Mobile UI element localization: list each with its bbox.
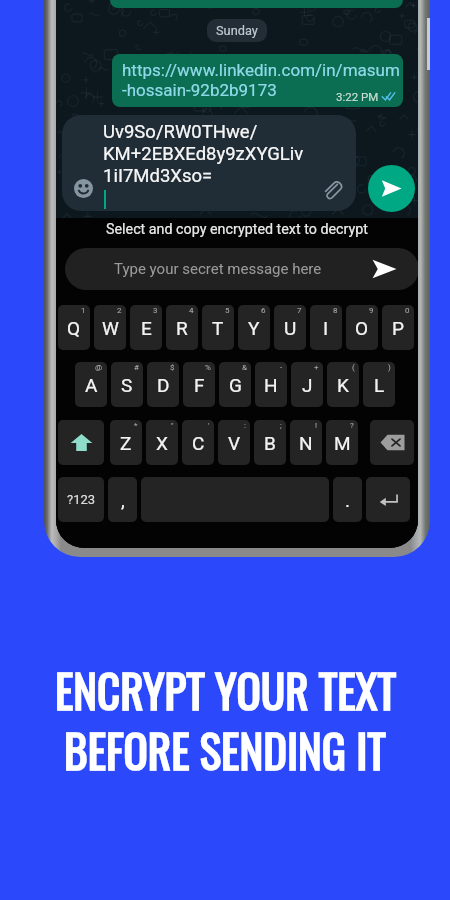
staticText: + bbox=[314, 363, 319, 372]
staticText: B bbox=[264, 432, 276, 454]
staticText: X bbox=[156, 432, 168, 454]
button[interactable]: D bbox=[147, 362, 179, 407]
button[interactable]: W bbox=[94, 305, 126, 350]
button[interactable]: H bbox=[255, 362, 287, 407]
staticText: 1iI7Md3Xso= bbox=[103, 165, 213, 187]
staticText: W bbox=[102, 317, 119, 339]
button[interactable]: Shift bbox=[58, 420, 104, 465]
staticText: J bbox=[302, 374, 313, 396]
staticText: 1 bbox=[81, 306, 86, 315]
staticText: 3 bbox=[153, 306, 158, 315]
button[interactable]: L bbox=[363, 362, 395, 407]
staticText: 6 bbox=[261, 306, 266, 315]
staticText: 9 bbox=[369, 306, 374, 315]
staticText: 3:22 PM bbox=[336, 90, 379, 103]
staticText: M bbox=[334, 432, 351, 454]
staticText: ? bbox=[350, 421, 354, 430]
staticText: , bbox=[121, 489, 125, 511]
button[interactable]: Z bbox=[110, 420, 142, 465]
button[interactable]: P bbox=[382, 305, 414, 350]
button[interactable]: Q bbox=[58, 305, 90, 350]
button[interactable]: Y bbox=[238, 305, 270, 350]
staticText: 4 bbox=[189, 306, 194, 315]
staticText: ENCRYPT YOUR TEXT bbox=[55, 656, 396, 723]
staticText: Sunday bbox=[216, 23, 258, 38]
staticText: N bbox=[299, 432, 313, 454]
button[interactable]: E bbox=[130, 305, 162, 350]
staticText: ( bbox=[352, 363, 355, 372]
button[interactable]: ?123 bbox=[58, 477, 104, 522]
staticText: 0 bbox=[405, 306, 410, 315]
button[interactable]: Send message bbox=[368, 165, 415, 212]
button[interactable]: G bbox=[219, 362, 251, 407]
staticText: ?123 bbox=[67, 492, 96, 507]
staticText: D bbox=[157, 374, 170, 396]
button[interactable]: Type your secret message here bbox=[65, 248, 418, 290]
staticText: 2 bbox=[117, 306, 122, 315]
staticText: Uv9So/RW0THwe/ bbox=[103, 121, 258, 143]
staticText: ; bbox=[280, 421, 282, 430]
staticText: F bbox=[194, 374, 205, 396]
staticText: O bbox=[355, 317, 369, 339]
button[interactable]: S bbox=[111, 362, 143, 407]
staticText: Z bbox=[120, 432, 132, 454]
button[interactable]: N bbox=[290, 420, 322, 465]
staticText: R bbox=[176, 317, 188, 339]
button[interactable]: T bbox=[202, 305, 234, 350]
staticText: % bbox=[205, 363, 211, 372]
staticText: BEFORE SENDING IT bbox=[64, 716, 386, 783]
staticText: $ bbox=[170, 363, 175, 372]
button[interactable]: J bbox=[291, 362, 323, 407]
staticText: * bbox=[134, 421, 138, 430]
staticText: A bbox=[85, 374, 98, 396]
staticText: : bbox=[244, 421, 246, 430]
staticText: " bbox=[171, 421, 174, 430]
button[interactable]: I bbox=[310, 305, 342, 350]
staticText: S bbox=[121, 374, 133, 396]
button[interactable]: , bbox=[108, 477, 137, 522]
staticText: G bbox=[229, 374, 242, 396]
staticText: https://www.linkedin.com/in/masum bbox=[122, 60, 400, 80]
staticText: 7 bbox=[297, 306, 302, 315]
staticText: & bbox=[242, 363, 247, 372]
staticText: H bbox=[264, 374, 278, 396]
button[interactable]: Enter bbox=[366, 477, 410, 522]
staticText: ! bbox=[315, 421, 318, 430]
staticText: -hossain-92b2b9173 bbox=[122, 80, 277, 100]
staticText: K bbox=[337, 374, 349, 396]
staticText: P bbox=[392, 317, 404, 339]
staticText: KM+2EBXEd8y9zXYGLiv bbox=[103, 143, 304, 165]
button[interactable]: C bbox=[182, 420, 214, 465]
staticText: Q bbox=[67, 317, 81, 339]
staticText: V bbox=[228, 432, 241, 454]
staticText: Type your secret message here bbox=[114, 260, 322, 278]
staticText: 5 bbox=[225, 306, 230, 315]
staticText: - bbox=[280, 363, 283, 372]
button[interactable]: O bbox=[346, 305, 378, 350]
staticText: ' bbox=[208, 421, 210, 430]
button[interactable]: X bbox=[146, 420, 178, 465]
button[interactable]: M bbox=[326, 420, 358, 465]
button[interactable]: K bbox=[327, 362, 359, 407]
button[interactable]: Backspace bbox=[370, 420, 414, 465]
button[interactable]: V bbox=[218, 420, 250, 465]
staticText: . bbox=[345, 489, 351, 511]
staticText: 8 bbox=[333, 306, 338, 315]
staticText: E bbox=[141, 317, 152, 339]
staticText: Select and copy encrypted text to decryp… bbox=[106, 221, 368, 238]
staticText: U bbox=[284, 317, 297, 339]
staticText: I bbox=[323, 317, 329, 339]
staticText: C bbox=[192, 432, 205, 454]
staticText: T bbox=[212, 317, 224, 339]
staticText: @ bbox=[95, 363, 103, 372]
button[interactable]: A bbox=[75, 362, 107, 407]
button[interactable]: . bbox=[333, 477, 362, 522]
staticText: L bbox=[374, 374, 385, 396]
button[interactable]: R bbox=[166, 305, 198, 350]
button[interactable]: F bbox=[183, 362, 215, 407]
button[interactable]: U bbox=[274, 305, 306, 350]
button[interactable]: B bbox=[254, 420, 286, 465]
staticText: Y bbox=[248, 317, 260, 339]
staticText: # bbox=[134, 363, 139, 372]
